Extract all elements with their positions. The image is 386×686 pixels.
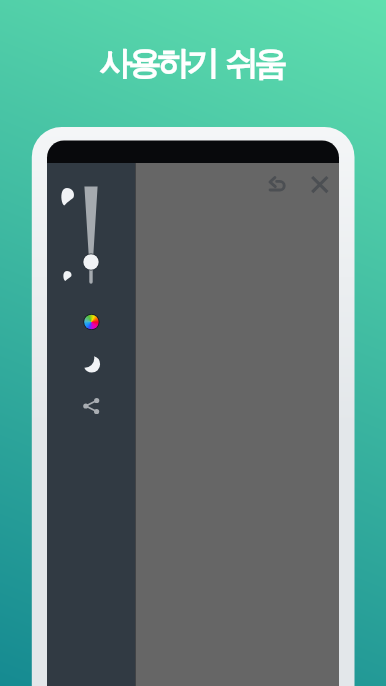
staticText: 쉬움 — [227, 43, 285, 85]
button[interactable]: Colour picker — [76, 307, 106, 337]
button[interactable]: Dark mode — [76, 349, 106, 379]
button[interactable]: Brush size — [60, 178, 122, 288]
button[interactable]: Share — [76, 391, 106, 421]
button[interactable]: Close — [305, 170, 335, 200]
staticText: 사용하기 — [101, 43, 217, 85]
button[interactable]: Undo — [263, 170, 293, 200]
